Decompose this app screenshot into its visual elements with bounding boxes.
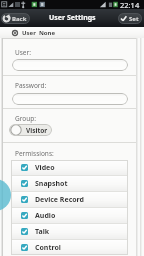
staticText: User Settings — [49, 13, 96, 23]
staticText: Visitor — [26, 126, 48, 135]
staticText: Back — [12, 15, 27, 23]
button[interactable] — [12, 93, 128, 105]
staticText: User: — [15, 48, 31, 57]
staticText: User None — [22, 29, 56, 37]
staticText: Password: — [15, 81, 47, 90]
button[interactable] — [12, 59, 128, 71]
staticText: Group: — [15, 114, 36, 123]
button[interactable]: User None — [0, 27, 144, 38]
button[interactable]: Snapshot — [11, 176, 128, 191]
staticText: Audio — [35, 211, 56, 221]
staticText: Permissions: — [15, 149, 54, 158]
button[interactable]: Back — [1, 13, 30, 24]
button[interactable]: Set — [118, 13, 142, 24]
staticText: Control — [35, 243, 61, 253]
staticText: Device Record — [35, 195, 85, 205]
button[interactable]: Control — [11, 240, 128, 255]
staticText: 22:14 — [120, 0, 140, 9]
button[interactable]: Video — [11, 160, 128, 175]
button[interactable]: Talk — [11, 224, 128, 239]
button[interactable]: Visitor — [9, 124, 52, 136]
staticText: Set — [129, 15, 139, 23]
staticText: Talk — [35, 227, 50, 237]
button[interactable]: Device Record — [11, 192, 128, 207]
staticText: Video — [35, 163, 55, 173]
staticText: Snapshot — [35, 179, 68, 189]
button[interactable]: Audio — [11, 208, 128, 223]
